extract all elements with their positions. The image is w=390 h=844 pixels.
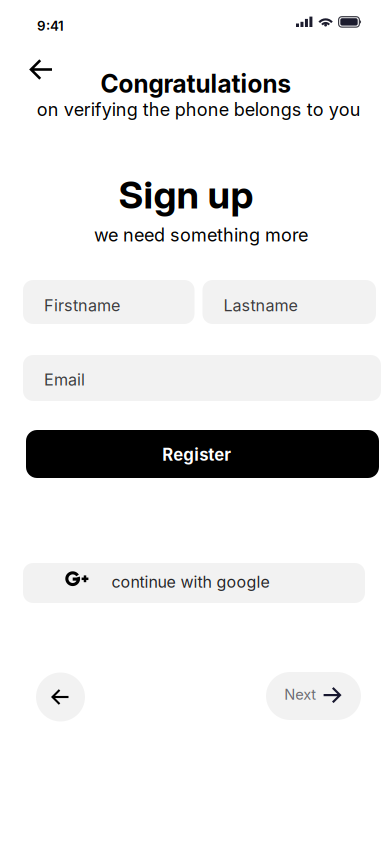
button[interactable]: Previous step bbox=[36, 672, 85, 722]
staticText: Firstname bbox=[44, 296, 120, 315]
staticText: Lastname bbox=[223, 296, 297, 315]
staticText: Congratulations bbox=[100, 69, 291, 99]
button[interactable]: Next bbox=[266, 672, 361, 720]
button[interactable]: Register bbox=[26, 430, 379, 478]
button[interactable]: continue with google bbox=[23, 563, 365, 603]
staticText: Sign up bbox=[119, 172, 254, 218]
button[interactable]: Email bbox=[23, 355, 381, 401]
staticText: on verifying the phone belongs to you bbox=[37, 98, 361, 120]
staticText: Next bbox=[284, 686, 316, 703]
button[interactable]: Firstname bbox=[23, 280, 194, 324]
staticText: we need something more bbox=[94, 224, 308, 246]
staticText: Register bbox=[162, 445, 231, 465]
staticText: Email bbox=[44, 370, 85, 389]
button[interactable]: Back bbox=[20, 50, 62, 88]
staticText: continue with google bbox=[111, 572, 269, 592]
staticText: 9:41 bbox=[37, 18, 64, 34]
button[interactable]: Lastname bbox=[202, 280, 376, 324]
